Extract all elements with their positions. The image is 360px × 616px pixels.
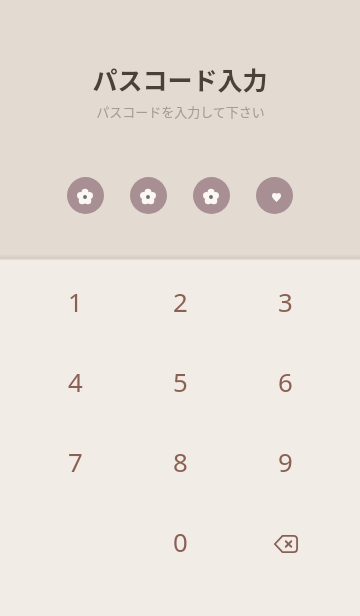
button[interactable]: 1 [23, 261, 128, 341]
button[interactable]: 3 [233, 261, 338, 341]
staticText: パスコード入力 [92, 61, 268, 97]
button[interactable]: 0 [128, 501, 233, 581]
staticText: 9 [278, 444, 293, 479]
button[interactable]: 6 [233, 341, 338, 421]
staticText: パスコードを入力して下さい [96, 102, 265, 121]
staticText: 1 [68, 284, 83, 319]
staticText: 7 [68, 444, 83, 479]
button[interactable]: 5 [128, 341, 233, 421]
staticText: 0 [173, 524, 188, 559]
button[interactable]: 7 [23, 421, 128, 501]
staticText: 3 [278, 284, 293, 319]
button[interactable]: 8 [128, 421, 233, 501]
staticText: 2 [173, 284, 188, 319]
staticText: 8 [173, 444, 188, 479]
button[interactable]: Delete [233, 501, 338, 581]
staticText: 5 [173, 364, 188, 399]
staticText: 6 [278, 364, 293, 399]
staticText: 4 [68, 364, 83, 399]
button[interactable]: 2 [128, 261, 233, 341]
button[interactable]: 4 [23, 341, 128, 421]
button[interactable]: 9 [233, 421, 338, 501]
